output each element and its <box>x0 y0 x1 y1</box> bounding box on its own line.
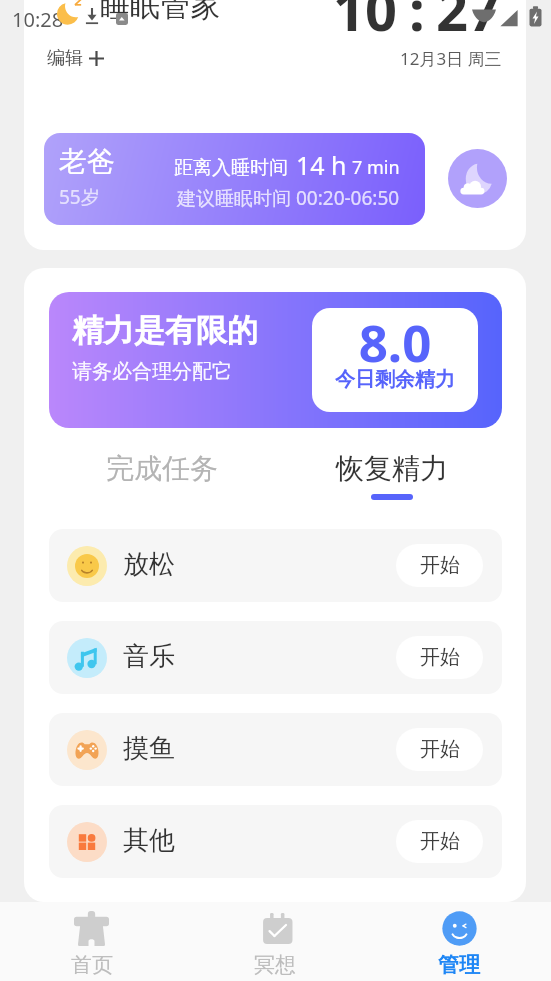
staticText: 55岁 <box>59 184 100 210</box>
staticText: 距离入睡时间 <box>174 156 288 180</box>
staticText: 首页 <box>71 952 113 978</box>
staticText: 完成任务 <box>106 451 218 486</box>
button[interactable]: 首页 <box>0 902 183 981</box>
staticText: 12月3日 周三 <box>400 47 502 70</box>
staticText: 开始 <box>420 829 460 854</box>
button[interactable]: 开始 <box>396 544 483 587</box>
staticText: 冥想 <box>254 952 296 978</box>
staticText: 10:28 <box>12 6 64 33</box>
button[interactable]: 开始 <box>396 728 483 771</box>
staticText: 建议睡眠时间 00:20-06:50 <box>177 185 400 211</box>
staticText: 管理 <box>438 952 480 978</box>
button[interactable]: 恢复精力 <box>306 451 478 503</box>
button[interactable]: 完成任务 <box>76 451 248 503</box>
staticText: 开始 <box>420 553 460 578</box>
staticText: : <box>409 0 425 47</box>
staticText: 摸鱼 <box>123 732 175 765</box>
button[interactable]: 精力是有限的 <box>49 292 502 428</box>
staticText: 编辑 <box>47 47 83 70</box>
staticText: 今日剩余精力 <box>312 367 478 392</box>
staticText: 老爸 <box>59 144 115 179</box>
button[interactable]: 管理 <box>367 902 551 981</box>
staticText: 14 h <box>296 148 347 182</box>
staticText: 睡眠管家 <box>100 0 220 25</box>
button[interactable]: 编辑 <box>47 45 104 72</box>
staticText: 放松 <box>123 548 175 581</box>
button[interactable]: 其他 <box>49 805 502 878</box>
staticText: 7 min <box>352 155 400 180</box>
staticText: 其他 <box>123 824 175 857</box>
button[interactable]: 冥想 <box>183 902 367 981</box>
button[interactable]: 老爸 <box>44 133 425 225</box>
staticText: 10 <box>333 0 398 47</box>
button[interactable]: 摸鱼 <box>49 713 502 786</box>
staticText: 音乐 <box>123 640 175 673</box>
staticText: 恢复精力 <box>336 451 448 486</box>
staticText: 开始 <box>420 737 460 762</box>
button[interactable]: 开始 <box>396 636 483 679</box>
staticText: 精力是有限的 <box>72 311 258 350</box>
button[interactable]: 音乐 <box>49 621 502 694</box>
button[interactable]: 放松 <box>49 529 502 602</box>
staticText: 开始 <box>420 645 460 670</box>
button[interactable]: 开始 <box>396 820 483 863</box>
staticText: 8.0 <box>312 308 478 376</box>
button[interactable]: Profile avatar <box>448 149 507 208</box>
staticText: 27 <box>436 0 501 47</box>
staticText: 请务必合理分配它 <box>72 359 232 384</box>
